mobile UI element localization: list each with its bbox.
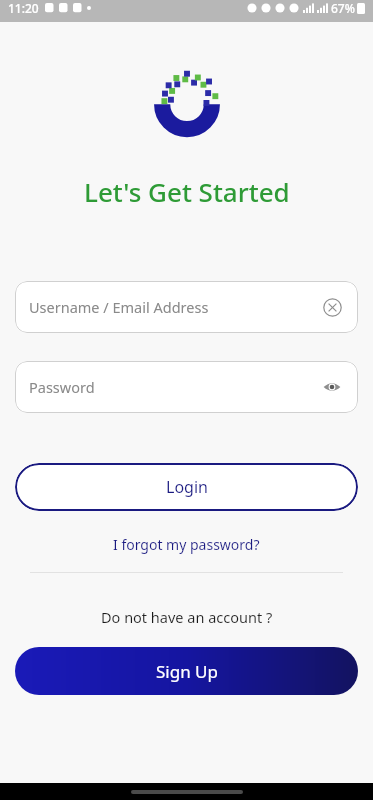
staticText: 11:20 (8, 0, 39, 16)
button[interactable]: Password (15, 361, 358, 413)
staticText: Password (29, 377, 95, 397)
staticText: 67% (331, 0, 355, 16)
button[interactable]: Login (15, 463, 358, 511)
button[interactable]: Clear text (320, 295, 344, 319)
staticText: I forgot my password? (113, 535, 260, 554)
staticText: Username / Email Address (29, 297, 209, 317)
button[interactable]: I forgot my password? (0, 531, 373, 558)
staticText: Login (166, 476, 208, 498)
button[interactable]: Sign Up (15, 647, 358, 695)
button[interactable]: Username / Email Address (15, 281, 358, 333)
staticText: Let's Get Started (84, 174, 290, 209)
staticText: Sign Up (156, 660, 218, 683)
staticText: Do not have an account ? (101, 607, 273, 627)
button[interactable]: Show password (320, 375, 344, 399)
